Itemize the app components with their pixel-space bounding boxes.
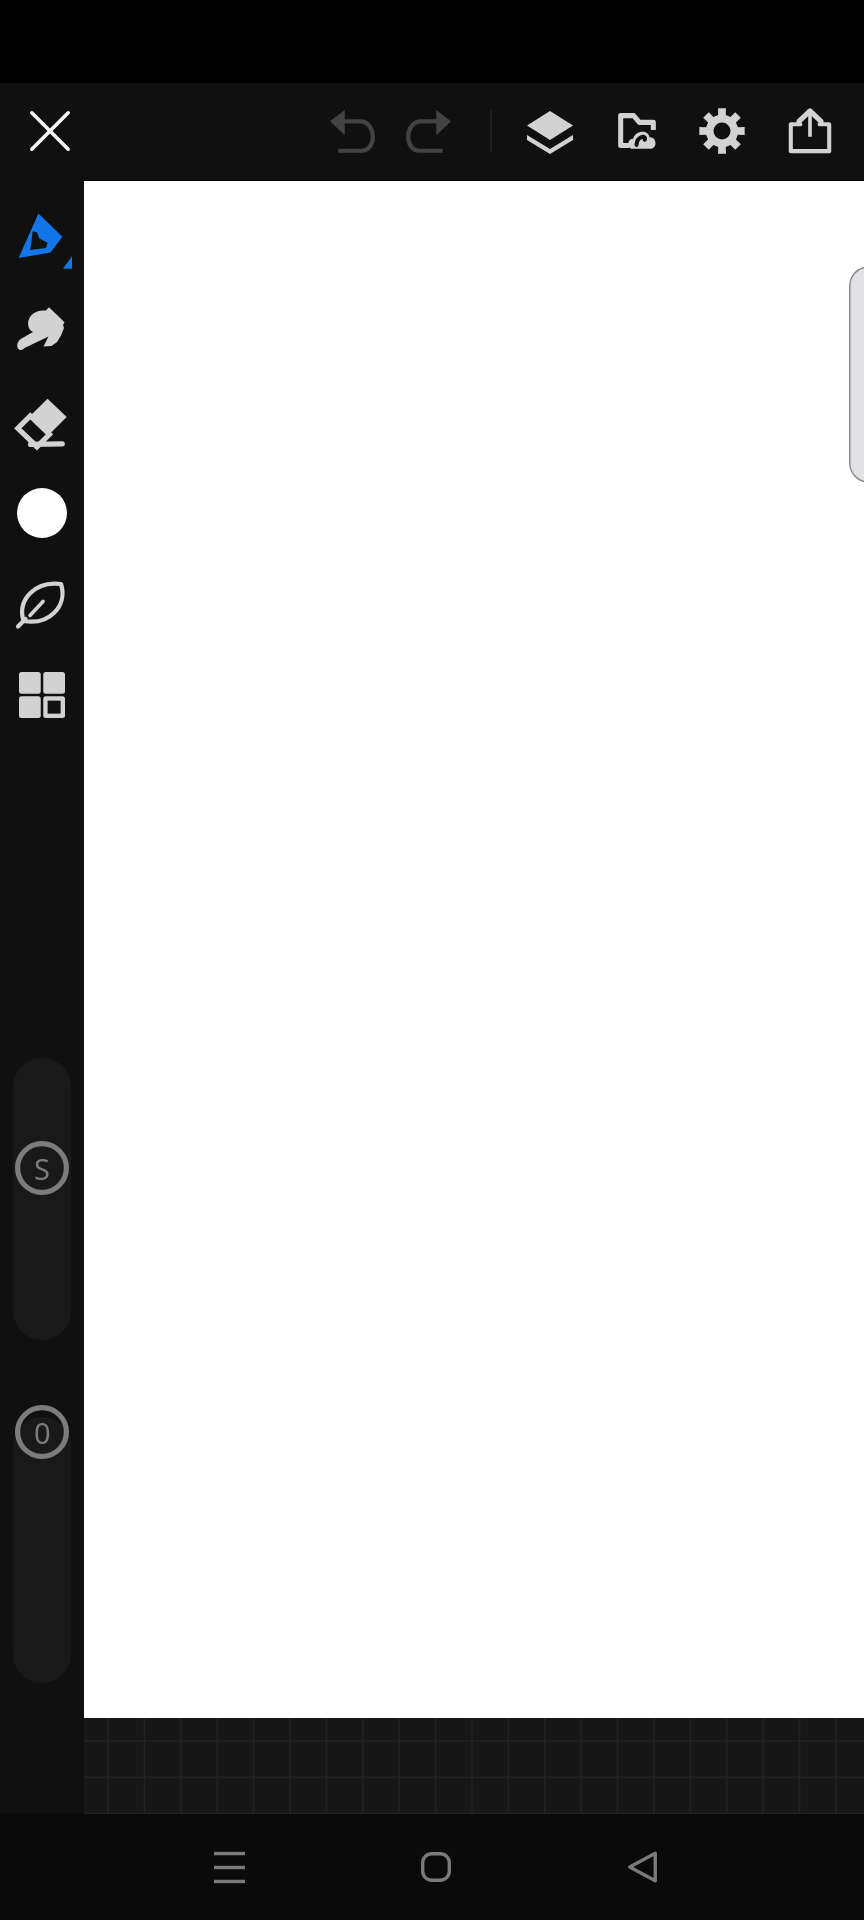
button[interactable]: Adjust 0 [15,1405,69,1459]
button[interactable]: Brush panel [849,266,864,483]
button[interactable]: Share [780,101,840,161]
button[interactable]: Colour [12,483,72,543]
button[interactable]: Layers [520,101,580,161]
button[interactable]: Recents [184,1815,274,1919]
button[interactable]: More tools [12,665,72,725]
button[interactable]: Gallery [607,101,667,161]
button[interactable]: Brush opacity [13,1417,71,1683]
button[interactable]: Redo [399,101,459,161]
button[interactable]: Blend [12,573,72,633]
staticText: S [34,1149,50,1188]
button[interactable]: Adjust S [15,1141,69,1195]
button[interactable]: Undo [322,101,382,161]
button[interactable]: Brush [12,210,72,270]
button[interactable]: Back [597,1815,687,1919]
button[interactable]: Settings [692,101,752,161]
button[interactable]: Smudge [12,300,72,360]
button[interactable]: Home [391,1815,481,1919]
staticText: 0 [34,1413,51,1452]
button[interactable]: Close [19,100,81,162]
button[interactable]: Eraser [12,391,72,451]
button[interactable]: Brush size [13,1058,71,1340]
